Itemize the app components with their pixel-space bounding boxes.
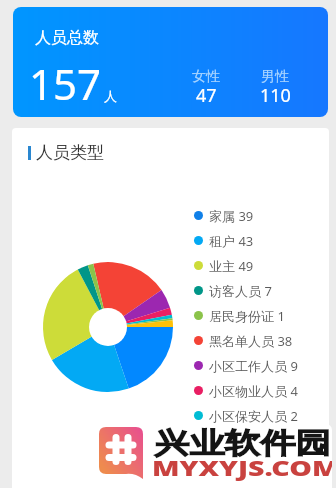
staticText: 小区物业人员 4 bbox=[209, 382, 298, 400]
staticText: 访客人员 7 bbox=[209, 282, 272, 300]
staticText: 157 bbox=[29, 55, 102, 112]
staticText: 家属 39 bbox=[209, 207, 254, 225]
button[interactable]: 女性 bbox=[176, 62, 236, 110]
staticText: 人员类型 bbox=[36, 142, 104, 163]
button[interactable]: 小区物业人员 4 bbox=[194, 378, 326, 403]
button[interactable]: 人员类型 bbox=[28, 142, 104, 163]
button[interactable]: 男性 bbox=[245, 62, 305, 110]
staticText: 兴业软件园 bbox=[154, 425, 331, 461]
staticText: 业主 49 bbox=[209, 257, 254, 275]
staticText: 居民身份证 1 bbox=[209, 307, 285, 325]
staticText: 110 bbox=[260, 83, 291, 108]
staticText: 47 bbox=[196, 83, 217, 108]
button[interactable]: 家属 39 bbox=[194, 203, 326, 228]
staticText: 黑名单人员 38 bbox=[209, 332, 293, 350]
button[interactable]: 业主 49 bbox=[194, 253, 326, 278]
staticText: 租户 43 bbox=[209, 232, 254, 250]
button[interactable]: 居民身份证 1 bbox=[194, 303, 326, 328]
staticText: 小区工作人员 9 bbox=[209, 357, 298, 375]
staticText: 男性 bbox=[261, 68, 289, 86]
staticText: 人 bbox=[104, 88, 117, 104]
button[interactable]: 租户 43 bbox=[194, 228, 326, 253]
button[interactable]: 小区工作人员 9 bbox=[194, 353, 326, 378]
button[interactable]: 人员总数 bbox=[13, 7, 328, 117]
button[interactable]: 黑名单人员 38 bbox=[194, 328, 326, 353]
staticText: 人员总数 bbox=[35, 28, 99, 48]
button[interactable]: 小区保安人员 2 bbox=[194, 403, 326, 428]
staticText: 女性 bbox=[192, 68, 220, 86]
staticText: 小区保安人员 2 bbox=[209, 407, 298, 425]
staticText: MYXYJS.COM bbox=[152, 453, 332, 482]
button[interactable]: 访客人员 7 bbox=[194, 278, 326, 303]
